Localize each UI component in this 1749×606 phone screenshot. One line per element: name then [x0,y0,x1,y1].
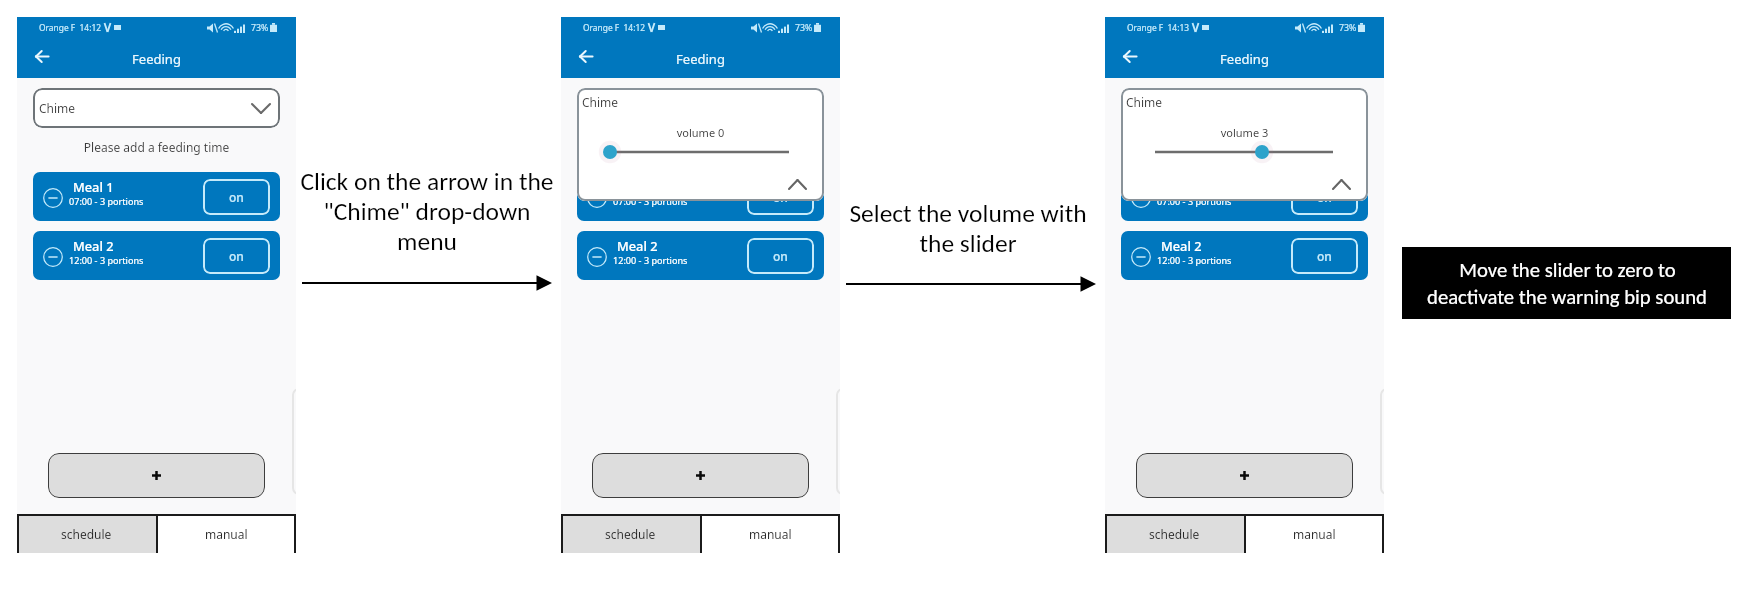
button[interactable]: schedule [561,514,700,553]
button[interactable]: on [203,238,270,274]
button[interactable]: on [1291,179,1358,215]
button[interactable]: Back [1112,41,1148,71]
staticText: Chime [582,94,619,110]
button[interactable]: Remove Meal 1 [33,172,280,221]
button[interactable]: Remove Meal 2 [587,247,607,267]
button[interactable]: Chime [1121,88,1368,201]
button[interactable]: manual [700,514,840,553]
button[interactable]: Remove Meal 1 [577,172,824,221]
button[interactable]: on [203,179,270,215]
button[interactable]: on [747,238,814,274]
button[interactable]: Remove Meal 2 [33,231,280,280]
button[interactable]: Add feeding time [592,453,809,498]
staticText: Chime [1126,94,1163,110]
staticText: the slider [843,228,1093,259]
button[interactable]: Add feeding time [1136,453,1353,498]
staticText: Meal 2 [617,237,658,254]
staticText: Move the slider to zero to [1459,257,1676,282]
staticText: Click on the arrow in the [299,166,555,197]
button[interactable]: Remove Meal 1 [43,188,63,208]
button[interactable]: Remove Meal 1 [1121,172,1368,221]
staticText: manual [1293,526,1336,542]
button[interactable]: on [747,179,814,215]
button[interactable]: Remove Meal 2 [1121,231,1368,280]
staticText: schedule [1149,526,1200,542]
button[interactable]: manual [156,514,296,553]
staticText: Meal 2 [1161,237,1202,254]
staticText: on [1317,248,1332,264]
staticText: Please add a feeding time [17,139,296,155]
button[interactable]: Collapse [1325,172,1357,196]
staticText: 07:00 - 3 portions [69,195,144,207]
staticText: 12:00 - 3 portions [1157,254,1232,266]
staticText: on [773,189,788,205]
staticText: on [1317,189,1332,205]
staticText: Meal 2 [73,237,114,254]
button[interactable]: Remove Meal 2 [43,247,63,267]
button[interactable]: Back [568,41,604,71]
button[interactable]: schedule [17,514,156,553]
staticText: manual [749,526,792,542]
staticText: Orange F 14:12 [583,22,645,33]
staticText: 73% [251,22,269,34]
staticText: Select the volume with [843,198,1093,229]
staticText: 12:00 - 3 portions [69,254,144,266]
staticText: Meal 1 [73,178,114,195]
staticText: Feeding [561,50,840,68]
staticText: manual [205,526,248,542]
staticText: volume 0 [577,125,824,140]
staticText: Feeding [1105,50,1384,68]
button[interactable]: Remove Meal 2 [577,231,824,280]
staticText: Orange F 14:13 [1127,22,1189,33]
button[interactable]: manual [1244,514,1384,553]
staticText: on [773,248,788,264]
button[interactable]: Chime [577,88,824,201]
staticText: 07:00 - 3 portions [1157,195,1232,207]
button[interactable]: Chime [33,88,280,128]
staticText: on [229,248,244,264]
staticText: 07:00 - 3 portions [613,195,688,207]
staticText: "Chime" drop-down [299,196,555,227]
button[interactable]: Back [24,41,60,71]
staticText: 12:00 - 3 portions [613,254,688,266]
button[interactable]: on [1291,238,1358,274]
staticText: schedule [61,526,112,542]
staticText: on [229,189,244,205]
staticText: menu [299,226,555,257]
staticText: schedule [605,526,656,542]
button[interactable]: Remove Meal 1 [587,188,607,208]
staticText: volume 3 [1121,125,1368,140]
staticText: Orange F 14:12 [39,22,101,33]
staticText: Feeding [17,50,296,68]
button[interactable]: Collapse [781,172,813,196]
button[interactable]: Remove Meal 2 [1131,247,1151,267]
staticText: deactivate the warning bip sound [1427,284,1707,309]
staticText: 73% [1339,22,1357,34]
staticText: Chime [39,100,76,116]
button[interactable]: schedule [1105,514,1244,553]
button[interactable]: Remove Meal 1 [1131,188,1151,208]
staticText: 73% [795,22,813,34]
button[interactable]: Add feeding time [48,453,265,498]
